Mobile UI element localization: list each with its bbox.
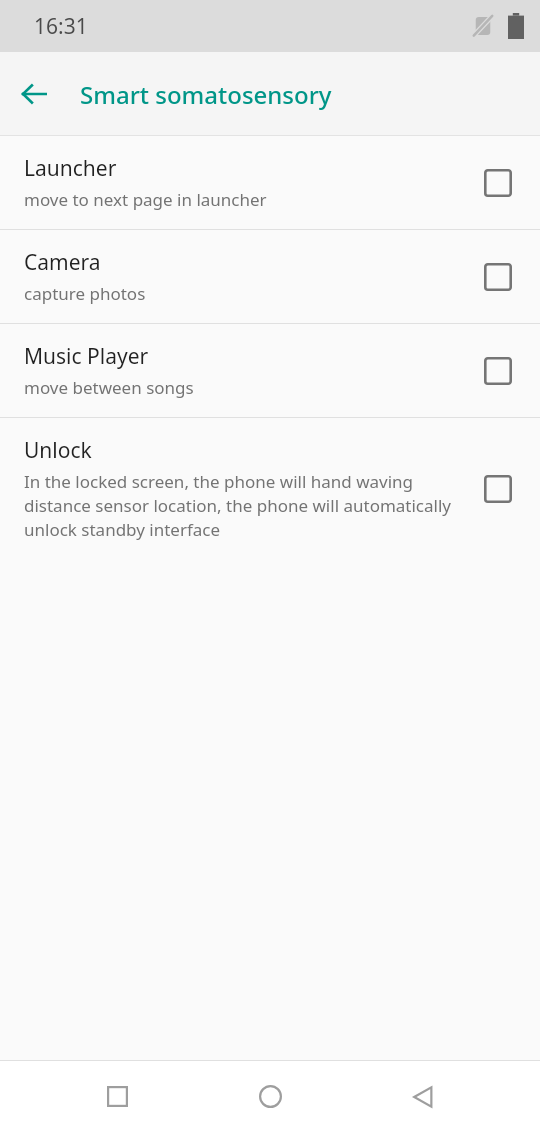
staticText: 16:31 [34,12,88,41]
staticText: Camera [24,248,101,277]
button[interactable]: Back [387,1061,459,1132]
button[interactable]: Toggle Unlock [478,469,518,509]
button[interactable]: Launcher [0,136,540,229]
button[interactable]: Unlock [0,418,540,559]
staticText: Launcher [24,154,117,183]
staticText: Music Player [24,342,149,371]
staticText: move between songs [24,376,194,399]
button[interactable]: Music Player [0,324,540,417]
staticText: move to next page in launcher [24,188,267,211]
button[interactable]: Toggle Music Player [478,351,518,391]
button[interactable]: Toggle Camera [478,257,518,297]
staticText: capture photos [24,282,146,305]
button[interactable]: Toggle Launcher [478,163,518,203]
staticText: Smart somatosensory [80,78,332,111]
staticText: In the locked screen, the phone will han… [24,470,462,541]
button[interactable]: Recent apps [81,1061,153,1132]
button[interactable]: Camera [0,230,540,323]
button[interactable]: Home [234,1061,306,1132]
staticText: Unlock [24,436,92,465]
button[interactable]: Back [10,70,58,118]
